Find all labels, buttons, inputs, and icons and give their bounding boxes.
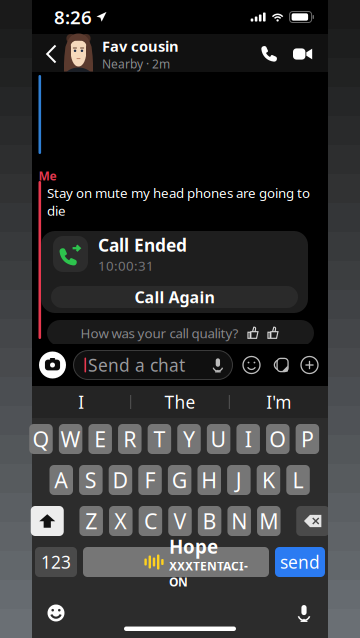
staticText: S: [85, 466, 97, 494]
button[interactable]: Z: [79, 506, 103, 536]
button[interactable]: V: [168, 506, 192, 536]
staticText: XXXTENTACION: [169, 558, 248, 590]
staticText: D: [112, 466, 128, 494]
staticText: The: [164, 390, 195, 413]
button[interactable]: I'm: [230, 386, 328, 418]
staticText: Call Again: [134, 286, 214, 308]
button[interactable]: J: [227, 465, 251, 495]
button[interactable]: S: [79, 465, 103, 495]
staticText: I'm: [266, 390, 291, 413]
button[interactable]: X: [109, 506, 133, 536]
staticText: L: [292, 466, 303, 494]
staticText: X: [114, 507, 127, 535]
staticText: 10:00:31: [98, 257, 154, 274]
staticText: K: [262, 466, 275, 494]
button[interactable]: W: [59, 424, 82, 454]
button[interactable]: Bad call quality: [265, 323, 280, 343]
button[interactable]: P: [296, 424, 319, 454]
staticText: Z: [85, 507, 97, 535]
button[interactable]: Dictation: [292, 598, 316, 628]
staticText: E: [94, 425, 106, 453]
staticText: Me: [38, 168, 56, 184]
staticText: V: [173, 507, 186, 535]
staticText: Q: [32, 425, 49, 453]
staticText: P: [301, 425, 314, 453]
staticText: Call Ended: [98, 234, 187, 257]
button[interactable]: E: [88, 424, 112, 454]
button[interactable]: Shift: [31, 506, 64, 536]
staticText: Send a chat: [88, 353, 185, 376]
button[interactable]: H: [197, 465, 221, 495]
button[interactable]: N: [227, 506, 251, 536]
button[interactable]: T: [148, 424, 171, 454]
staticText: send: [280, 550, 320, 573]
staticText: R: [123, 425, 136, 453]
staticText: I: [78, 390, 84, 413]
button[interactable]: M: [257, 506, 280, 536]
staticText: F: [145, 466, 156, 494]
button[interactable]: I: [32, 386, 130, 418]
staticText: T: [153, 425, 165, 453]
staticText: U: [211, 425, 227, 453]
staticText: C: [144, 507, 157, 535]
button[interactable]: 123: [35, 547, 77, 577]
button[interactable]: Emoji keyboard: [44, 598, 68, 628]
button[interactable]: K: [257, 465, 280, 495]
staticText: G: [172, 466, 188, 494]
staticText: 123: [41, 550, 71, 573]
button[interactable]: Camera: [38, 350, 66, 380]
staticText: 8:26: [54, 5, 92, 29]
button[interactable]: B: [198, 506, 221, 536]
button[interactable]: Video call: [290, 34, 316, 74]
button[interactable]: D: [109, 465, 132, 495]
button[interactable]: R: [118, 424, 142, 454]
staticText: A: [54, 466, 68, 494]
staticText: Nearby · 2m: [102, 56, 170, 72]
button[interactable]: Call Again: [51, 286, 298, 308]
staticText: Fav cousin: [102, 36, 179, 56]
button[interactable]: Stickers: [269, 352, 291, 378]
button[interactable]: Delete: [296, 506, 329, 536]
button[interactable]: O: [266, 424, 289, 454]
button[interactable]: The: [131, 386, 229, 418]
staticText: Hope: [169, 534, 218, 559]
staticText: H: [201, 466, 217, 494]
button[interactable]: U: [207, 424, 230, 454]
staticText: N: [231, 507, 247, 535]
staticText: I: [245, 425, 252, 453]
staticText: How was your call quality?: [80, 324, 238, 342]
button[interactable]: Good call quality: [245, 323, 260, 343]
button[interactable]: More: [298, 352, 320, 378]
button[interactable]: I: [236, 424, 260, 454]
staticText: Stay on mute my head phones are going to…: [47, 184, 310, 219]
staticText: W: [61, 425, 81, 453]
staticText: Y: [183, 425, 195, 453]
staticText: J: [236, 466, 242, 494]
button[interactable]: F: [138, 465, 162, 495]
staticText: M: [259, 507, 278, 535]
button[interactable]: Y: [177, 424, 201, 454]
button[interactable]: C: [139, 506, 162, 536]
button[interactable]: G: [168, 465, 191, 495]
button[interactable]: Back: [38, 34, 64, 74]
button[interactable]: Q: [29, 424, 53, 454]
button[interactable]: Audio call: [256, 34, 282, 74]
button[interactable]: A: [49, 465, 73, 495]
button[interactable]: send: [275, 547, 325, 577]
staticText: O: [269, 425, 286, 453]
staticText: B: [203, 507, 217, 535]
button[interactable]: L: [286, 465, 310, 495]
button[interactable]: Emoji: [240, 352, 262, 378]
